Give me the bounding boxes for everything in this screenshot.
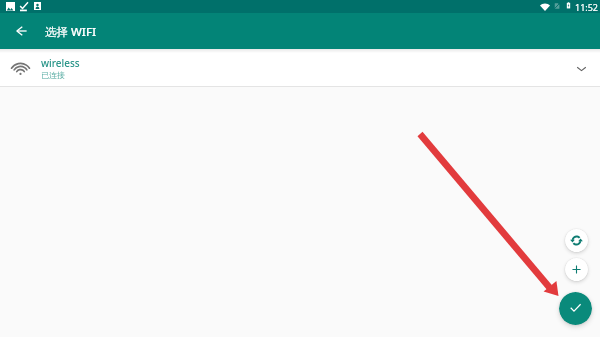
staticText: 11:52 xyxy=(575,1,599,13)
button[interactable]: Expand xyxy=(566,53,596,83)
button[interactable]: Refresh xyxy=(565,229,588,252)
staticText: 选择 WIFI xyxy=(45,24,97,40)
button[interactable]: Back xyxy=(10,19,34,43)
button[interactable]: Add xyxy=(565,258,588,281)
button[interactable]: Confirm xyxy=(559,292,592,325)
staticText: wireless xyxy=(41,56,80,70)
button[interactable]: wireless xyxy=(0,49,600,86)
staticText: 已连接 xyxy=(41,70,65,80)
